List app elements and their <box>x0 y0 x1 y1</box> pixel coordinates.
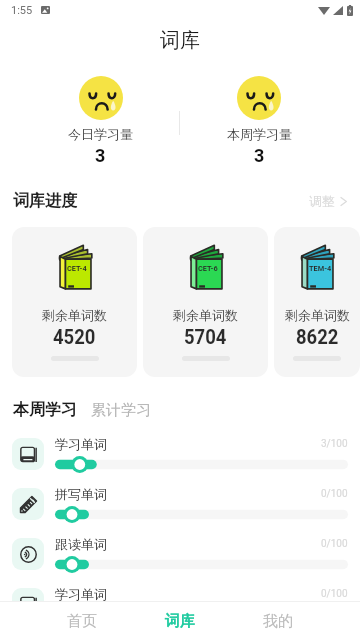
staticText: CET-4 <box>67 265 87 273</box>
staticText: 拼写单词 <box>55 486 107 502</box>
staticText: 剩余单词数 <box>173 307 238 323</box>
button[interactable]: TEM-4 <box>274 227 360 377</box>
staticText: 3 <box>95 145 106 166</box>
staticText: 本周学习量 <box>227 126 292 142</box>
staticText: CET-6 <box>198 265 218 273</box>
staticText: 学习单词 <box>55 436 107 452</box>
staticText: 今日学习量 <box>68 126 133 142</box>
staticText: 词库进度 <box>13 191 77 211</box>
staticText: 词库 <box>165 612 195 631</box>
button[interactable]: 本周学习 <box>13 400 77 420</box>
staticText: 剩余单词数 <box>285 307 350 323</box>
staticText: 8622 <box>296 325 339 350</box>
button[interactable]: 拼写单词 <box>0 479 360 529</box>
staticText: 跟读单词 <box>55 536 107 552</box>
staticText: 0/100 <box>321 538 348 550</box>
staticText: 0/100 <box>321 488 348 500</box>
button[interactable]: CET-4 <box>12 227 137 377</box>
button[interactable]: 本周学习量 <box>180 74 338 166</box>
button[interactable]: 累计学习 <box>91 401 151 420</box>
staticText: 5704 <box>184 325 227 350</box>
staticText: 我的 <box>263 612 293 631</box>
button[interactable]: 学习单词 <box>0 579 360 629</box>
staticText: 1:55 <box>11 4 33 17</box>
staticText: 0/100 <box>321 588 348 600</box>
staticText: 3 <box>254 145 265 166</box>
button[interactable]: 调整 <box>309 193 349 209</box>
button[interactable]: 今日学习量 <box>22 74 179 166</box>
staticText: 学习单词 <box>55 586 107 602</box>
button[interactable]: 学习单词 <box>0 429 360 479</box>
staticText: 剩余单词数 <box>42 307 107 323</box>
button[interactable]: 我的 <box>229 602 327 640</box>
button[interactable]: 首页 <box>33 602 131 640</box>
button[interactable]: CET-6 <box>143 227 268 377</box>
button[interactable]: 跟读单词 <box>0 529 360 579</box>
staticText: 3/100 <box>321 438 348 450</box>
staticText: TEM-4 <box>309 265 332 273</box>
staticText: 调整 <box>309 193 335 209</box>
button[interactable]: 词库 <box>131 602 229 640</box>
staticText: 首页 <box>67 612 97 631</box>
staticText: 4520 <box>53 325 96 350</box>
staticText: 词库 <box>160 28 200 53</box>
